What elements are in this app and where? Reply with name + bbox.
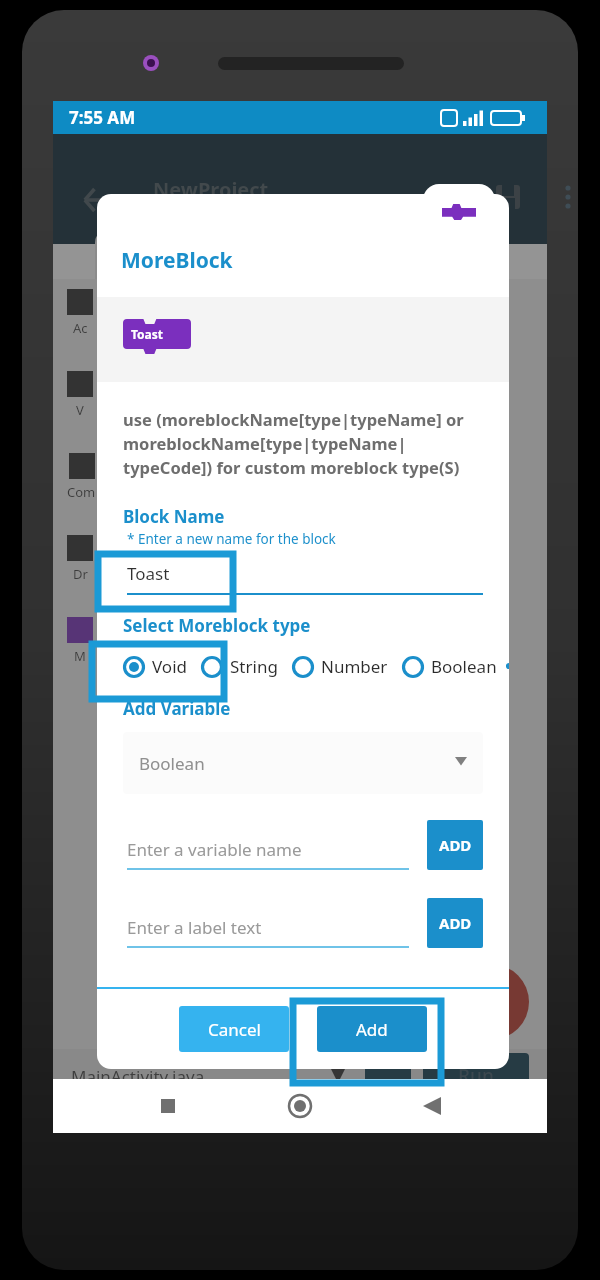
staticText: V (76, 401, 84, 419)
button[interactable]: Settings (365, 1053, 411, 1099)
button[interactable]: Dr (67, 535, 93, 583)
button[interactable]: Recent apps (151, 1089, 185, 1123)
staticText: Enter a label text (127, 916, 262, 939)
staticText: String (230, 655, 278, 678)
button[interactable]: Home (283, 1089, 317, 1123)
staticText: Add (356, 1018, 388, 1041)
button[interactable]: Ac (67, 289, 93, 337)
staticText: Run (458, 1063, 494, 1089)
staticText: Block Name (123, 505, 225, 528)
button[interactable]: More options (553, 182, 583, 212)
staticText: ADD (439, 913, 472, 933)
button[interactable]: V (67, 371, 93, 419)
staticText: Select Moreblock type (123, 614, 311, 637)
button[interactable]: Back (81, 184, 113, 216)
button[interactable]: Back (415, 1089, 449, 1123)
staticText: MoreBlock (121, 246, 233, 275)
staticText: * Enter a new name for the block (127, 530, 336, 548)
button[interactable]: ADD (427, 820, 483, 870)
staticText: Number (321, 655, 388, 678)
button[interactable]: Run project (453, 964, 529, 1040)
button[interactable]: ADD (427, 898, 483, 948)
staticText: Add Variable (123, 697, 231, 720)
button[interactable]: Run (423, 1053, 529, 1099)
staticText: use (moreblockName[type|typeName] or mor… (123, 408, 483, 479)
staticText: Void (152, 655, 187, 678)
button[interactable]: Save (493, 182, 523, 212)
staticText: Boolean (139, 752, 205, 775)
staticText: Toast (127, 562, 170, 585)
button[interactable]: MoreBlock tab (423, 184, 495, 239)
staticText: 7:55 AM (69, 106, 136, 129)
staticText: Dr (73, 565, 88, 583)
staticText: ADD (439, 835, 472, 855)
button[interactable]: Number (292, 655, 402, 678)
button[interactable]: M (67, 617, 93, 665)
staticText: Com (67, 483, 96, 501)
staticText: M (74, 647, 86, 665)
staticText: Enter a variable name (127, 838, 302, 861)
button[interactable]: Boolean (123, 732, 483, 794)
staticText: MainActivity.java (71, 1065, 205, 1088)
staticText: Toast (131, 326, 164, 342)
button[interactable]: Add (317, 1006, 427, 1052)
staticText: Boolean (431, 655, 497, 678)
staticText: Cancel (208, 1018, 261, 1041)
button[interactable]: Boolean (402, 655, 509, 678)
staticText: NewProject (153, 176, 269, 203)
button[interactable]: Com (67, 453, 96, 501)
button[interactable]: String (201, 655, 292, 678)
button[interactable]: Void (123, 655, 201, 678)
button[interactable] (180, 229, 262, 279)
staticText: Ac (73, 319, 88, 337)
button[interactable] (95, 229, 177, 279)
button[interactable]: Cancel (179, 1006, 289, 1052)
